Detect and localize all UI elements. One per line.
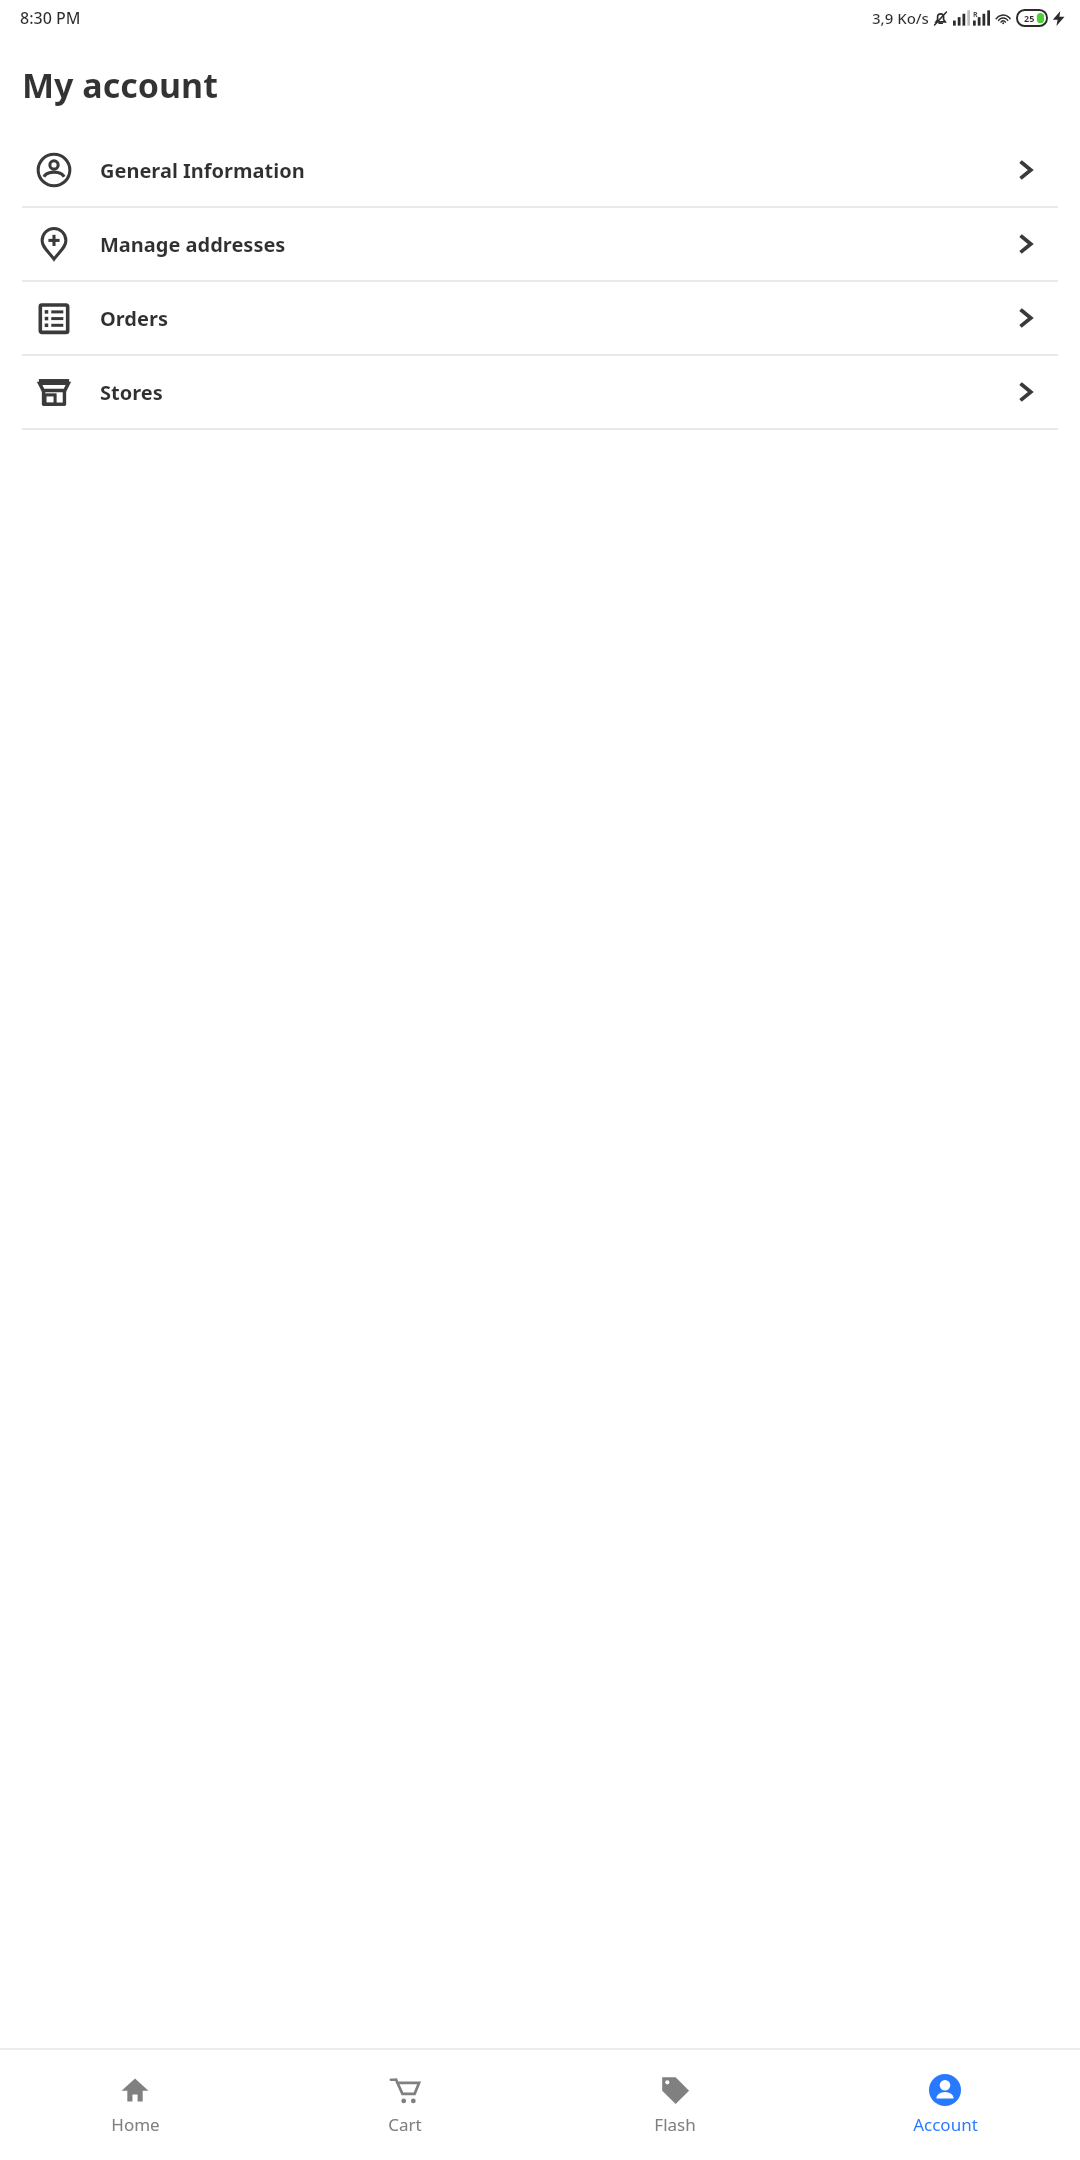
- staticText: Manage addresses: [100, 231, 286, 258]
- button[interactable]: Cart: [270, 2066, 540, 2144]
- staticText: Flash: [654, 2113, 696, 2136]
- staticText: Home: [111, 2113, 160, 2136]
- button[interactable]: Orders: [0, 282, 1080, 354]
- staticText: Cart: [388, 2113, 422, 2136]
- button[interactable]: Stores: [0, 356, 1080, 428]
- staticText: 3,9 Ko/s: [872, 8, 929, 28]
- button[interactable]: Account: [810, 2066, 1080, 2144]
- staticText: Stores: [100, 379, 163, 406]
- button[interactable]: General Information: [0, 134, 1080, 206]
- staticText: R: [973, 10, 978, 20]
- staticText: Account: [913, 2113, 978, 2136]
- button[interactable]: Home: [0, 2066, 270, 2144]
- staticText: Orders: [100, 305, 168, 332]
- staticText: General Information: [100, 157, 305, 184]
- staticText: 8:30 PM: [20, 7, 81, 29]
- staticText: My account: [22, 62, 218, 108]
- staticText: 25: [1024, 12, 1035, 24]
- button[interactable]: Flash: [540, 2066, 810, 2144]
- button[interactable]: Manage addresses: [0, 208, 1080, 280]
